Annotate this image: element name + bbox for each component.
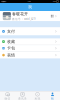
staticText: 微信	[4, 97, 10, 100]
staticText: 通讯录	[18, 97, 27, 100]
staticText: 中国移动	[1, 1, 5, 2]
button[interactable]: 发现	[30, 91, 45, 100]
staticText: 春暖花开	[12, 11, 28, 16]
staticText: 16:24	[27, 1, 31, 2]
staticText: 卡包	[7, 46, 15, 51]
button[interactable]: 表情	[0, 52, 60, 58]
button[interactable]: 通讯录	[15, 91, 30, 100]
button[interactable]: 我	[45, 91, 60, 100]
button[interactable]: 春暖花开	[0, 11, 60, 21]
staticText: 支付	[7, 29, 15, 34]
staticText: 78%	[53, 1, 56, 2]
button[interactable]: 支付	[0, 27, 60, 35]
staticText: 收藏	[7, 39, 15, 44]
button[interactable]: 微信	[0, 91, 15, 100]
staticText: 发现	[34, 97, 40, 100]
staticText: 我	[51, 97, 54, 100]
staticText: 表情	[7, 53, 15, 57]
button[interactable]: 卡包	[0, 45, 60, 52]
button[interactable]: 收藏	[0, 38, 60, 45]
staticText: 我	[28, 4, 32, 9]
staticText: 微信号：wxid_k29	[12, 17, 36, 21]
